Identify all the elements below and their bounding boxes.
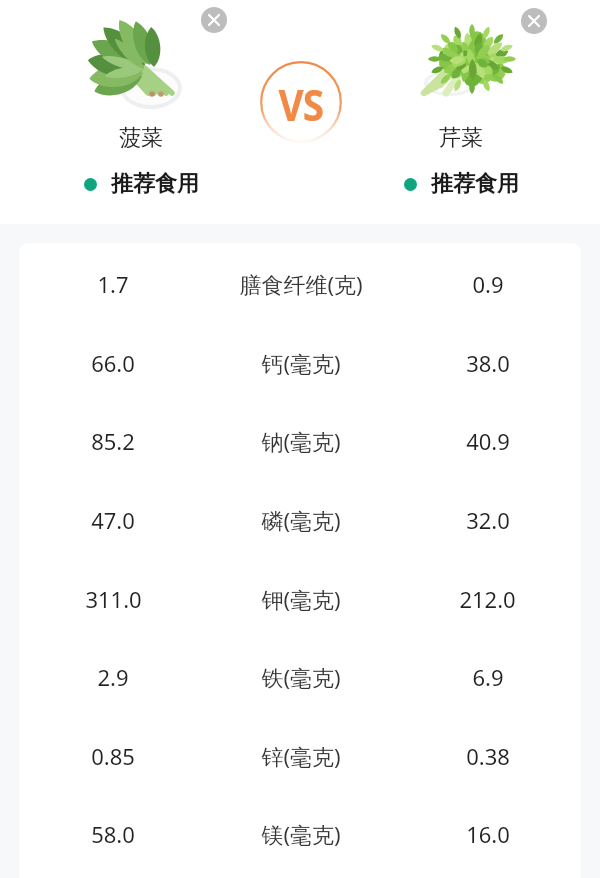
button[interactable]: 85.2 [19,401,581,480]
button[interactable]: 芹菜 [351,0,571,224]
staticText: 212.0 [459,584,516,614]
staticText: 菠菜 [119,124,163,152]
staticText: 40.9 [466,426,510,456]
staticText: 铁(毫克) [261,662,341,692]
button[interactable]: 311.0 [19,559,581,638]
staticText: 锌(毫克) [261,741,341,771]
staticText: 镁(毫克) [261,819,341,849]
button[interactable]: 47.0 [19,480,581,559]
staticText: 6.9 [472,662,504,692]
staticText: 38.0 [466,348,510,378]
staticText: 85.2 [91,426,135,456]
staticText: 2.9 [97,662,129,692]
button[interactable]: 1.7 [19,244,581,323]
staticText: 膳食纤维(克) [239,269,363,299]
staticText: 推荐食用 [111,170,199,198]
button[interactable]: Remove item [201,7,227,33]
staticText: 16.0 [466,819,510,849]
staticText: 推荐食用 [431,170,519,198]
button[interactable]: 66.0 [19,323,581,402]
staticText: 0.38 [466,741,510,771]
staticText: 钾(毫克) [261,584,341,614]
staticText: 1.7 [97,269,129,299]
button[interactable]: 58.0 [19,794,581,873]
staticText: 66.0 [91,348,135,378]
staticText: 58.0 [91,819,135,849]
staticText: VS [278,75,323,134]
staticText: 47.0 [91,505,135,535]
staticText: 0.85 [91,741,135,771]
button[interactable]: 2.9 [19,637,581,716]
button[interactable]: 0.85 [19,716,581,795]
staticText: 32.0 [466,505,510,535]
button[interactable]: VS [260,61,342,143]
staticText: 磷(毫克) [261,505,341,535]
button[interactable]: 菠菜 [31,0,251,224]
button[interactable]: Remove item [521,8,547,34]
staticText: 0.9 [472,269,504,299]
staticText: 钠(毫克) [261,426,341,456]
staticText: 钙(毫克) [261,348,341,378]
staticText: 芹菜 [439,124,483,152]
staticText: 311.0 [85,584,142,614]
